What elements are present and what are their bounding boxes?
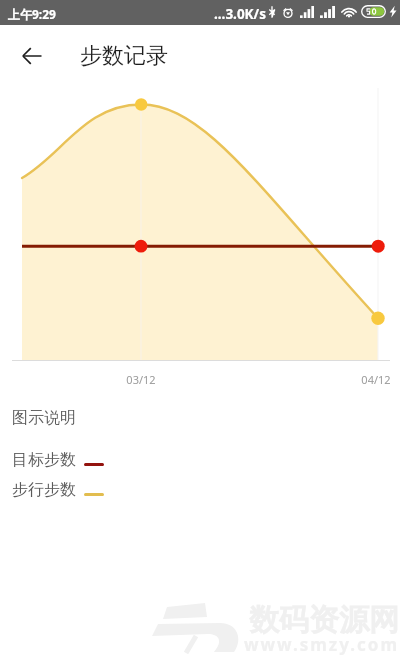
staticText: 图示说明: [12, 408, 76, 428]
staticText: 目标步数: [12, 450, 76, 470]
staticText: 步数记录: [80, 42, 168, 70]
staticText: 上午9:29: [8, 6, 56, 22]
staticText: www.smzy.com: [244, 633, 400, 656]
button[interactable]: 目标步数: [12, 450, 107, 470]
staticText: 步行步数: [12, 480, 76, 500]
staticText: 数码资源网: [249, 601, 399, 639]
staticText: ...3.0K/s: [214, 5, 266, 23]
button[interactable]: 步行步数: [12, 480, 107, 500]
button[interactable]: Back: [10, 34, 54, 78]
staticText: 03/12: [121, 372, 161, 387]
staticText: 04/12: [356, 372, 396, 387]
